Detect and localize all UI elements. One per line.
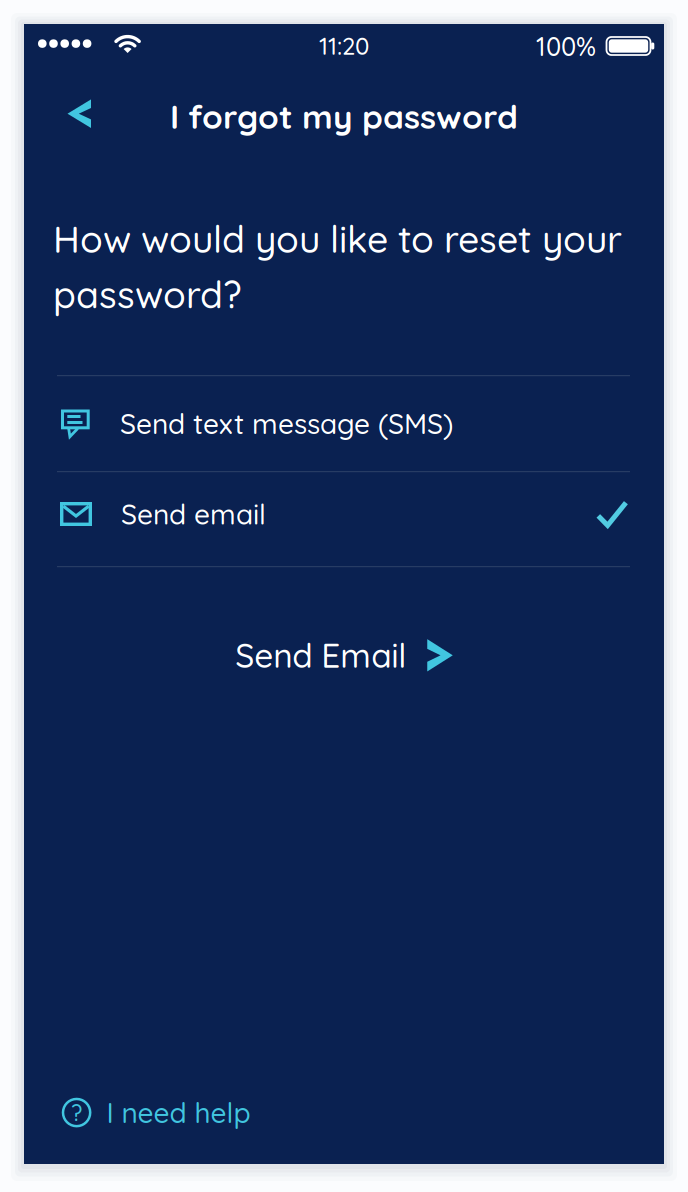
- staticText: Send email: [121, 497, 266, 531]
- staticText: I forgot my password: [170, 96, 518, 137]
- button[interactable]: Send text message (SMS): [24, 376, 664, 471]
- staticText: ?: [71, 1099, 82, 1126]
- staticText: How would you like to reset your passwor…: [53, 216, 622, 317]
- staticText: 11:20: [319, 31, 369, 60]
- button[interactable]: ?: [62, 1095, 251, 1130]
- staticText: 100%: [536, 31, 596, 62]
- staticText: Send text message (SMS): [120, 406, 453, 440]
- staticText: I need help: [107, 1095, 251, 1130]
- button[interactable]: Send Email: [219, 621, 469, 690]
- button[interactable]: [57, 91, 101, 136]
- button[interactable]: Send email: [24, 467, 664, 561]
- staticText: Send Email: [235, 635, 406, 676]
